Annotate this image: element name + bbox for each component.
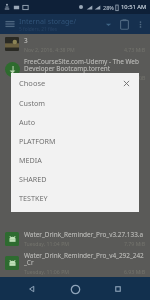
staticText: Choose — [19, 78, 46, 88]
button[interactable]: SHARED — [11, 169, 139, 188]
button[interactable]: Home — [64, 278, 86, 300]
staticText: 28% — [103, 4, 114, 11]
staticText: MEDIA — [19, 155, 42, 165]
button[interactable]: Recent apps — [107, 278, 129, 300]
staticText: 3 — [24, 36, 28, 45]
button[interactable]: 3 — [0, 34, 150, 54]
button[interactable]: Water_Drink_Reminder_Pro_v3.27.133.apk — [0, 228, 150, 249]
staticText: Nov 2, 2016, 4:38 PM — [24, 46, 75, 53]
button[interactable]: Clipboard — [118, 18, 131, 31]
staticText: FreeCourseSite.com-Udemy - The Web Devel… — [24, 57, 139, 73]
staticText: 5 folders, 21 files — [19, 26, 58, 33]
staticText: PLATFORM — [19, 136, 56, 146]
staticText: Water_Drink_Reminder_Pro_v4_292_242_Cr a… — [24, 251, 146, 267]
staticText: TESTKEY — [19, 193, 48, 203]
staticText: Internal storage/Download — [19, 16, 105, 26]
button[interactable]: Back — [21, 278, 43, 300]
staticText: 6.93 MiB — [124, 268, 146, 275]
staticText: Tuesday, 11:06 PM — [24, 268, 69, 275]
button[interactable]: MEDIA — [11, 150, 139, 169]
button[interactable]: Change sorting — [104, 20, 113, 29]
button[interactable]: Open navigation drawer — [4, 18, 16, 30]
staticText: SHARED — [19, 174, 47, 184]
staticText: Auto — [19, 117, 35, 127]
staticText: 7.79 MiB — [124, 240, 146, 247]
button[interactable]: FreeCourseSite.com-Udemy - The Web Devel… — [0, 54, 150, 83]
button[interactable]: Custom — [11, 93, 139, 112]
button[interactable]: More options — [135, 19, 146, 30]
staticText: 10:51 AM — [121, 3, 147, 11]
staticText: Water_Drink_Reminder_Pro_v3.27.133.apk — [24, 230, 146, 239]
button[interactable]: Close — [121, 78, 132, 89]
staticText: Custom — [19, 98, 46, 108]
staticText: Tuesday, 11:04 PM — [24, 240, 69, 247]
button[interactable]: Auto — [11, 112, 139, 131]
staticText: 4.73 MiB — [124, 46, 146, 53]
button[interactable]: Water_Drink_Reminder_Pro_v4_292_242_Cr a… — [0, 249, 150, 277]
staticText: 198.27 KiB — [120, 74, 146, 81]
button[interactable]: TESTKEY — [11, 188, 139, 207]
button[interactable]: PLATFORM — [11, 131, 139, 150]
